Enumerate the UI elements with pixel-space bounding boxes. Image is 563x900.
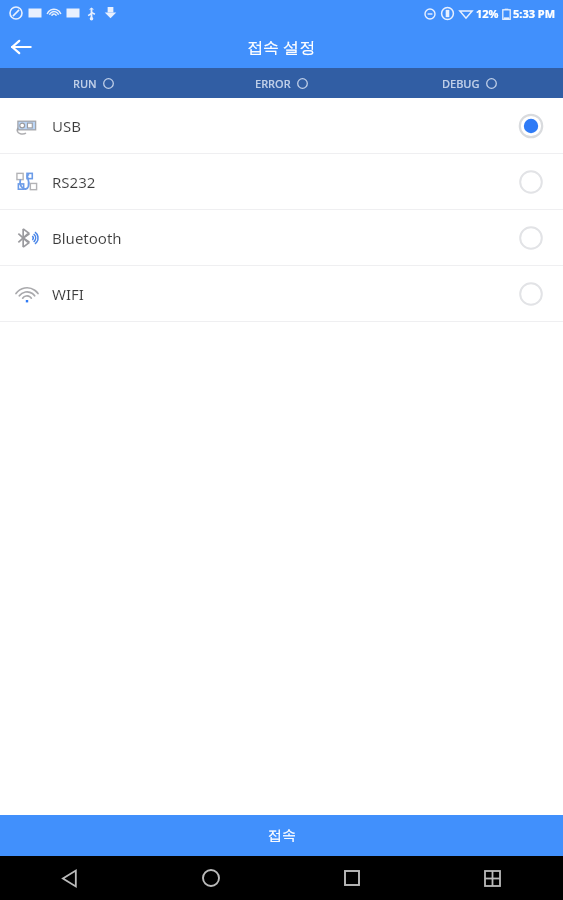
staticText: ERROR — [255, 76, 291, 91]
button[interactable]: RUN — [0, 68, 187, 98]
button[interactable]: DEBUG — [375, 68, 563, 98]
button[interactable]: ERROR — [187, 68, 375, 98]
staticText: 접속 — [268, 827, 296, 845]
staticText: 5:33 PM — [513, 6, 556, 21]
staticText: 12% — [476, 6, 499, 21]
button[interactable]: Bluetooth — [0, 210, 563, 265]
button[interactable]: Back — [0, 856, 140, 900]
button[interactable]: RS232 — [0, 154, 563, 209]
staticText: WIFI — [52, 284, 84, 304]
staticText: RUN — [73, 76, 97, 91]
staticText: 접속 설정 — [247, 36, 316, 58]
button[interactable]: USB — [0, 98, 563, 153]
button[interactable]: WIFI — [0, 266, 563, 321]
button[interactable]: 접속 — [0, 815, 563, 856]
button[interactable]: Split screen — [422, 856, 563, 900]
button[interactable]: Recent apps — [281, 856, 422, 900]
button[interactable]: Back — [0, 26, 42, 68]
staticText: DEBUG — [442, 76, 480, 91]
button[interactable]: Home — [140, 856, 281, 900]
staticText: RS232 — [52, 172, 96, 192]
staticText: Bluetooth — [52, 228, 122, 248]
staticText: USB — [52, 116, 81, 136]
